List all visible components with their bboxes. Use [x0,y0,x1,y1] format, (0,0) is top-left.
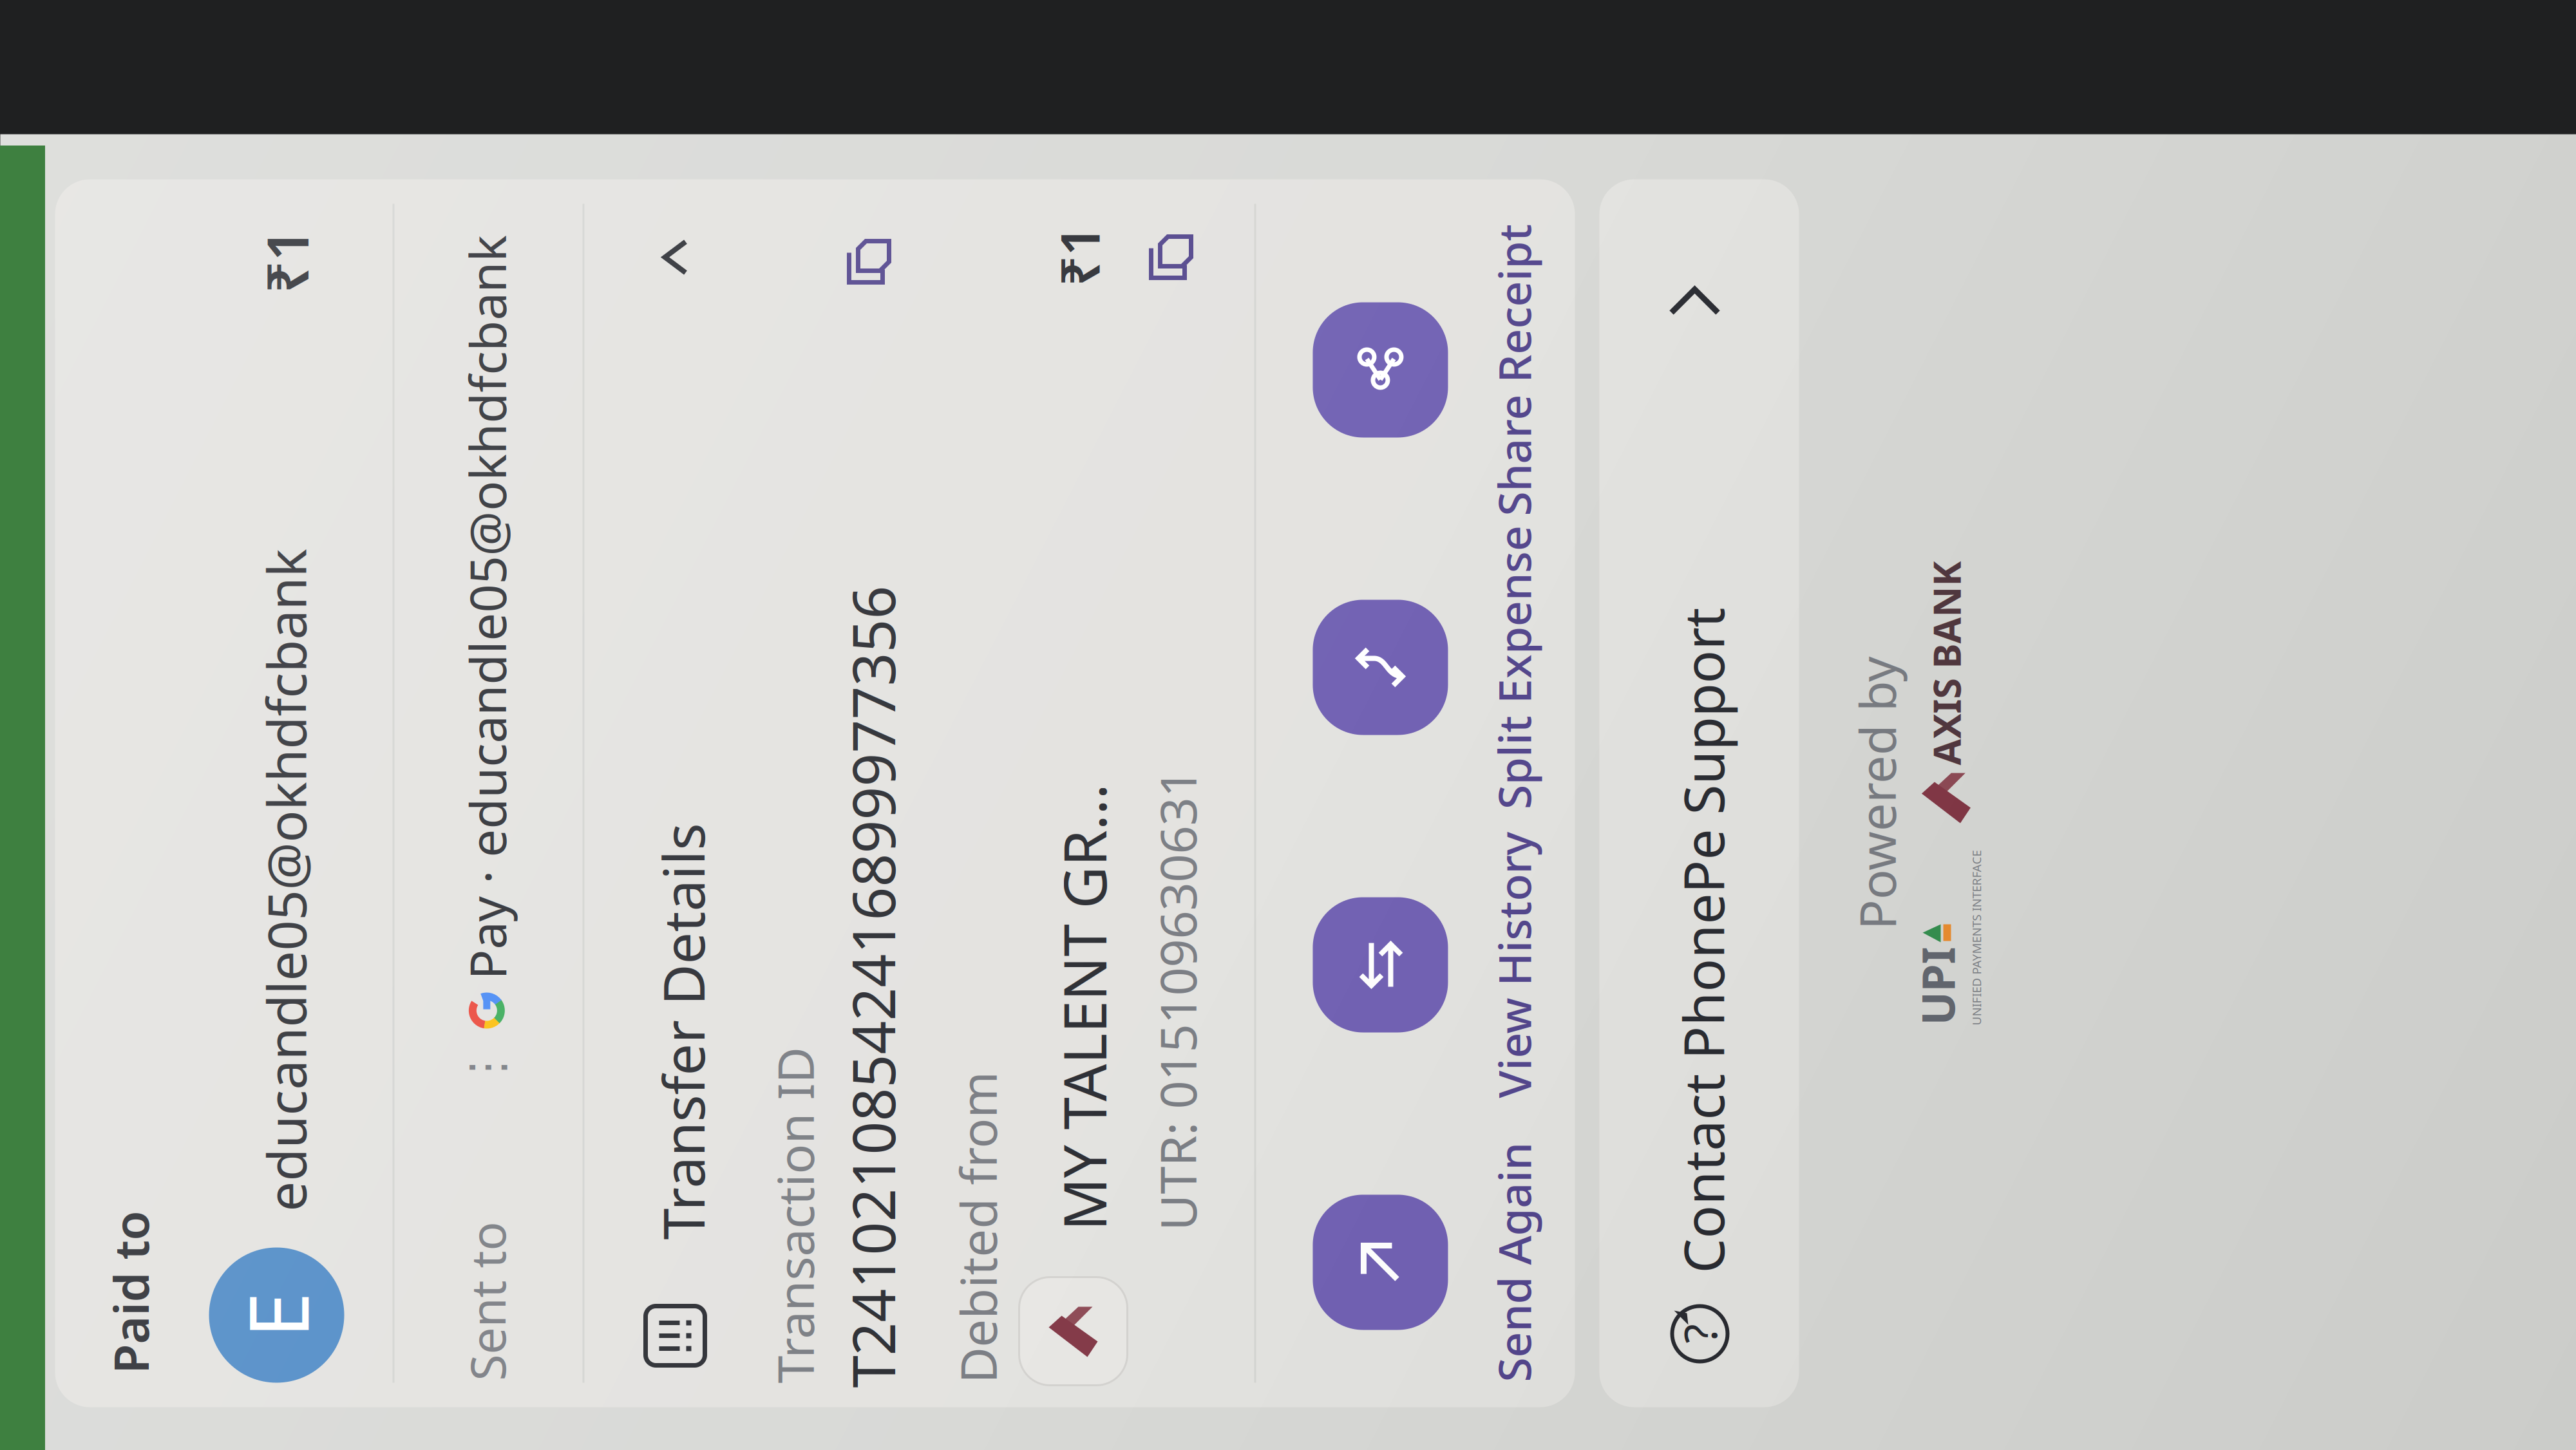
button[interactable]: Split Expense [1265,824,1563,1042]
button[interactable]: View History [968,824,1265,1042]
staticText: Contact PhonePe Support [808,1171,1474,1244]
button[interactable]: ? [674,1104,1902,1304]
staticText: Send Again [699,989,939,1048]
staticText: Powered by [1152,1348,1425,1414]
staticText: T24102108542416899977356 [694,339,1496,416]
staticText: MY TALENT GR... [851,550,1298,627]
staticText: UTR: 015109630631 [851,649,1312,715]
button[interactable]: Share Receipt [1563,824,1861,1042]
button[interactable]: Send Again [670,824,968,1042]
staticText: Share Receipt [1566,989,1858,1048]
staticText: Split Expense [1272,989,1556,1048]
button[interactable]: Copy [1795,348,1844,397]
staticText: View History [983,989,1250,1048]
staticText: Transaction ID [698,267,1034,333]
staticText: Transfer Details [842,150,1258,225]
